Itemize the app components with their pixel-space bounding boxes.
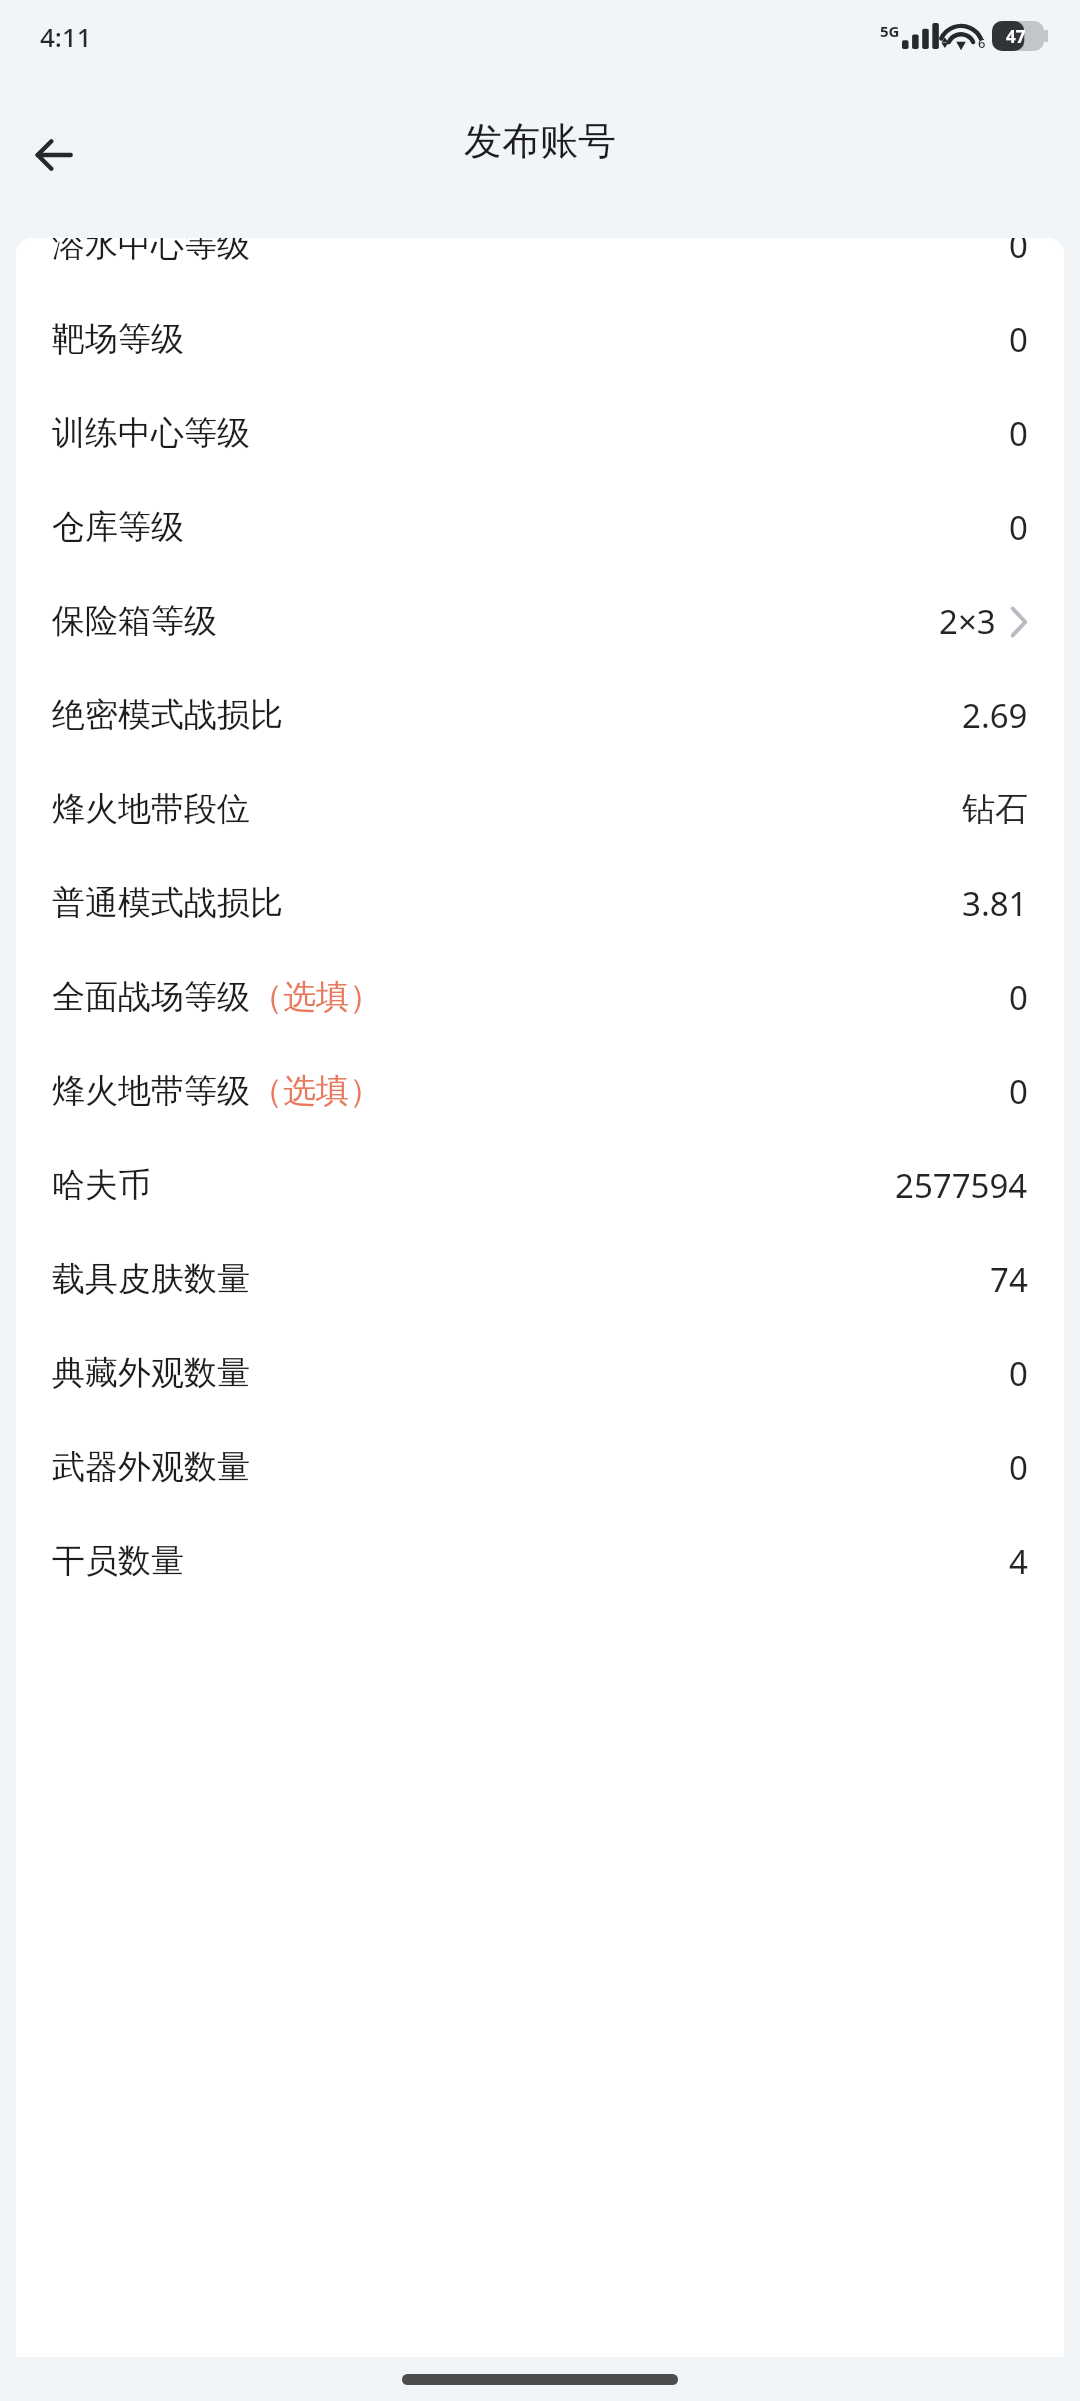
staticText: 0 [1009, 505, 1028, 550]
button[interactable]: 溶水中心等级 [16, 238, 1064, 292]
button[interactable]: 仓库等级 [16, 480, 1064, 574]
staticText: 载具皮肤数量 [52, 1258, 250, 1300]
button[interactable]: 绝密模式战损比 [16, 668, 1064, 762]
button[interactable]: 靶场等级 [16, 292, 1064, 386]
staticText: 4 [1009, 1539, 1028, 1584]
staticText: 烽火地带段位 [52, 788, 250, 830]
staticText: 0 [1009, 317, 1028, 362]
button[interactable]: 返回 [10, 109, 102, 201]
staticText: 武器外观数量 [52, 1446, 250, 1488]
staticText: 0 [1009, 411, 1028, 456]
staticText: 哈夫币 [52, 1164, 151, 1206]
staticText: 典藏外观数量 [52, 1352, 250, 1394]
staticText: 0 [1009, 1069, 1028, 1114]
button[interactable]: 哈夫币 [16, 1138, 1064, 1232]
button[interactable]: 保险箱等级 [16, 574, 1064, 668]
staticText: 烽火地带等级（选填） [52, 1070, 382, 1112]
staticText: 2.69 [962, 693, 1028, 738]
staticText: 3.81 [962, 881, 1028, 926]
staticText: 靶场等级 [52, 318, 184, 360]
staticText: 钻石 [962, 788, 1028, 830]
button[interactable]: 烽火地带等级（选填） [16, 1044, 1064, 1138]
staticText: 47 [1006, 25, 1026, 48]
staticText: 5G [880, 21, 900, 41]
staticText: 仓库等级 [52, 506, 184, 548]
button[interactable]: 训练中心等级 [16, 386, 1064, 480]
staticText: 6 [978, 34, 986, 52]
staticText: 绝密模式战损比 [52, 694, 283, 736]
staticText: 2577594 [895, 1163, 1028, 1208]
staticText: 2×3 [939, 599, 996, 644]
staticText: 干员数量 [52, 1540, 184, 1582]
staticText: 普通模式战损比 [52, 882, 283, 924]
staticText: 0 [1009, 975, 1028, 1020]
button[interactable]: 全面战场等级（选填） [16, 950, 1064, 1044]
staticText: 全面战场等级（选填） [52, 976, 382, 1018]
button[interactable]: 干员数量 [16, 1514, 1064, 1608]
staticText: 溶水中心等级 [52, 238, 250, 266]
staticText: 0 [1009, 1351, 1028, 1396]
staticText: 保险箱等级 [52, 600, 217, 642]
staticText: 发布账号 [464, 117, 616, 165]
staticText: 训练中心等级 [52, 412, 250, 454]
staticText: 74 [990, 1257, 1028, 1302]
button[interactable]: 武器外观数量 [16, 1420, 1064, 1514]
button[interactable]: 载具皮肤数量 [16, 1232, 1064, 1326]
button[interactable]: 典藏外观数量 [16, 1326, 1064, 1420]
staticText: 0 [1009, 1445, 1028, 1490]
staticText: 4:11 [40, 19, 92, 54]
button[interactable]: 烽火地带段位 [16, 762, 1064, 856]
staticText: 0 [1009, 238, 1028, 268]
button[interactable]: 普通模式战损比 [16, 856, 1064, 950]
